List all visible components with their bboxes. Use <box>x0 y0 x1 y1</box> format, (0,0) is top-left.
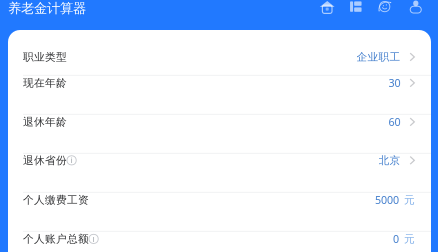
button[interactable]: 职业类型 <box>8 30 431 75</box>
staticText: 个人缴费工资 <box>23 193 89 206</box>
staticText: 5000 <box>375 193 399 207</box>
staticText: 企业职工 <box>356 50 400 63</box>
staticText: 个人账户总额 <box>23 232 89 245</box>
button[interactable]: 退休年龄 <box>8 115 431 153</box>
staticText: 元 <box>404 232 415 245</box>
button[interactable]: 现在年龄 <box>8 76 431 114</box>
staticText: 职业类型 <box>23 50 67 63</box>
button[interactable]: 退休省份 <box>8 154 431 192</box>
staticText: 退休年龄 <box>23 115 67 128</box>
staticText: i <box>71 155 73 166</box>
button[interactable]: Discover <box>378 1 391 12</box>
button[interactable]: Home <box>320 1 335 13</box>
button[interactable]: 个人缴费工资 <box>8 193 431 231</box>
staticText: 退休省份 <box>23 154 67 167</box>
staticText: 60 <box>388 115 400 129</box>
staticText: 北京 <box>378 154 400 167</box>
staticText: 元 <box>404 193 415 206</box>
staticText: 现在年龄 <box>23 76 67 89</box>
staticText: 养老金计算器 <box>8 0 86 16</box>
button[interactable]: Profile <box>410 0 421 10</box>
staticText: 0 <box>393 232 399 246</box>
button[interactable]: Tools <box>348 1 359 12</box>
staticText: i <box>93 234 95 244</box>
button[interactable]: 个人账户总额 <box>8 232 431 252</box>
staticText: 30 <box>388 76 400 90</box>
